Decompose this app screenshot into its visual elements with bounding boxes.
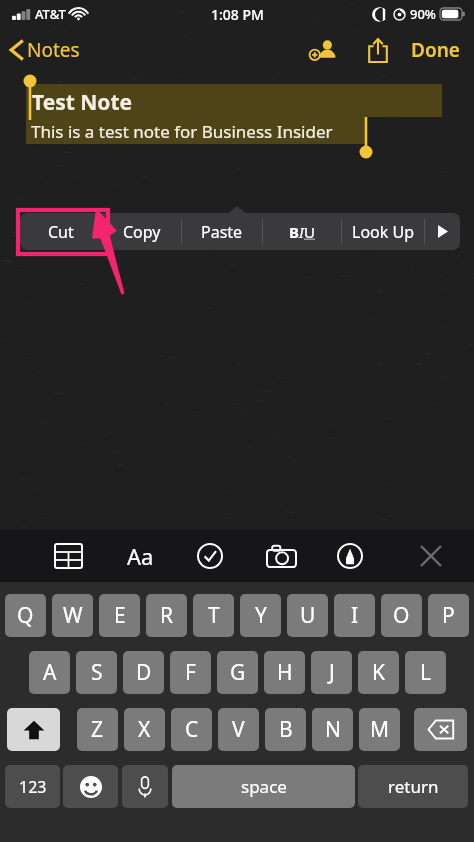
button[interactable]: Dictate	[122, 765, 168, 808]
button[interactable]: Copy	[103, 213, 181, 250]
button[interactable]: A	[29, 651, 70, 694]
button[interactable]: Aa	[118, 530, 162, 582]
button[interactable]: Share	[359, 31, 397, 69]
button[interactable]: Table	[46, 530, 90, 582]
staticText: space	[241, 775, 287, 798]
staticText: Q	[17, 601, 34, 630]
button[interactable]: Backspace	[414, 708, 467, 751]
staticText: B	[289, 222, 299, 242]
staticText: Test Note	[32, 88, 133, 117]
button[interactable]: More	[425, 213, 460, 250]
staticText: F	[185, 658, 196, 687]
staticText: N	[325, 715, 341, 744]
staticText: K	[372, 658, 385, 687]
button[interactable]: W	[52, 594, 93, 637]
button[interactable]: Look Up	[342, 213, 424, 250]
button[interactable]: Add People	[305, 31, 343, 69]
button[interactable]: T	[193, 594, 234, 637]
button[interactable]: C	[171, 708, 212, 751]
button[interactable]: O	[381, 594, 422, 637]
button[interactable]: Paste	[182, 213, 262, 250]
button[interactable]: return	[358, 765, 468, 808]
staticText: Cut	[48, 221, 74, 243]
button[interactable]: H	[264, 651, 305, 694]
staticText: 123	[19, 776, 47, 798]
staticText: R	[160, 601, 174, 630]
staticText: Notes	[27, 37, 80, 63]
button[interactable]: Camera	[259, 530, 303, 582]
staticText: T	[208, 601, 220, 630]
staticText: Z	[91, 715, 104, 744]
button[interactable]: J	[311, 651, 352, 694]
staticText: U	[300, 601, 316, 630]
staticText: U	[304, 222, 315, 242]
button[interactable]: X	[124, 708, 165, 751]
staticText: H	[277, 658, 293, 687]
button[interactable]: Q	[5, 594, 46, 637]
button[interactable]: Notes	[10, 37, 80, 63]
button[interactable]: Markup	[328, 530, 372, 582]
staticText: AT&T	[35, 5, 66, 23]
staticText: Done	[411, 37, 460, 63]
button[interactable]: N	[312, 708, 353, 751]
button[interactable]: I	[334, 594, 375, 637]
staticText: V	[232, 715, 245, 744]
staticText: E	[114, 601, 126, 630]
button[interactable]: Done	[407, 31, 464, 69]
button[interactable]: space	[172, 765, 355, 808]
staticText: I	[351, 601, 359, 630]
button[interactable]: S	[76, 651, 117, 694]
staticText: Aa	[127, 541, 154, 571]
button[interactable]: Emoji	[63, 765, 118, 808]
staticText: D	[136, 658, 152, 687]
staticText: G	[230, 658, 246, 687]
button[interactable]: Cut	[20, 213, 102, 250]
button[interactable]: P	[428, 594, 469, 637]
button[interactable]: B	[265, 708, 306, 751]
staticText: S	[91, 658, 103, 687]
button[interactable]: M	[359, 708, 400, 751]
button[interactable]: V	[218, 708, 259, 751]
button[interactable]: 123	[5, 765, 60, 808]
staticText: X	[138, 715, 151, 744]
staticText: P	[442, 601, 455, 630]
staticText: 1:08 PM	[211, 5, 264, 24]
button[interactable]: B	[263, 213, 341, 250]
button[interactable]: Close	[409, 530, 453, 582]
staticText: Copy	[123, 221, 161, 243]
staticText: return	[388, 775, 439, 798]
staticText: L	[420, 658, 432, 687]
staticText: 90%	[410, 5, 436, 23]
staticText: Look Up	[352, 221, 414, 243]
button[interactable]: K	[358, 651, 399, 694]
button[interactable]: U	[287, 594, 328, 637]
button[interactable]: D	[123, 651, 164, 694]
staticText: B	[279, 715, 293, 744]
button[interactable]: Checklist	[188, 530, 232, 582]
staticText: O	[393, 601, 410, 630]
button[interactable]: Y	[240, 594, 281, 637]
button[interactable]: Shift	[7, 708, 60, 751]
button[interactable]: R	[146, 594, 187, 637]
staticText: C	[185, 715, 199, 744]
button[interactable]: G	[217, 651, 258, 694]
button[interactable]: F	[170, 651, 211, 694]
button[interactable]: Z	[77, 708, 118, 751]
staticText: J	[329, 658, 335, 687]
staticText: Paste	[201, 221, 243, 243]
staticText: I	[299, 222, 304, 242]
button[interactable]: L	[405, 651, 446, 694]
staticText: A	[43, 658, 57, 687]
button[interactable]: E	[99, 594, 140, 637]
staticText: M	[370, 715, 390, 744]
staticText: Y	[255, 601, 267, 630]
staticText: This is a test note for Business Insider	[31, 120, 333, 143]
staticText: W	[63, 601, 83, 630]
